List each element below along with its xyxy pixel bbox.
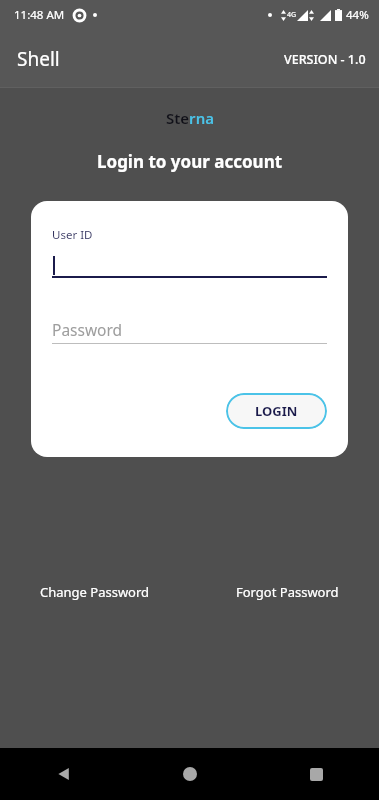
staticText: Sterna	[166, 108, 214, 128]
button[interactable]: Password	[52, 314, 327, 344]
button[interactable]: Back	[0, 748, 127, 800]
staticText: Change Password	[40, 583, 150, 601]
staticText: 4G	[287, 10, 297, 20]
staticText: User ID	[52, 227, 93, 243]
button[interactable]: Home	[127, 748, 253, 800]
staticText: Forgot Password	[236, 583, 339, 601]
staticText: VERSION - 1.0	[284, 51, 366, 68]
staticText: 11:48 AM	[14, 7, 65, 23]
button[interactable]: Change Password	[36, 579, 154, 605]
staticText: Password	[52, 319, 123, 340]
staticText: LOGIN	[255, 402, 298, 420]
button[interactable]: LOGIN	[226, 393, 327, 429]
staticText: Shell	[17, 46, 60, 72]
button[interactable]: Forgot Password	[232, 579, 343, 605]
staticText: Login to your account	[97, 150, 283, 173]
button[interactable]: Recent apps	[253, 748, 379, 800]
button[interactable]	[52, 252, 327, 278]
staticText: 44%	[346, 7, 369, 23]
